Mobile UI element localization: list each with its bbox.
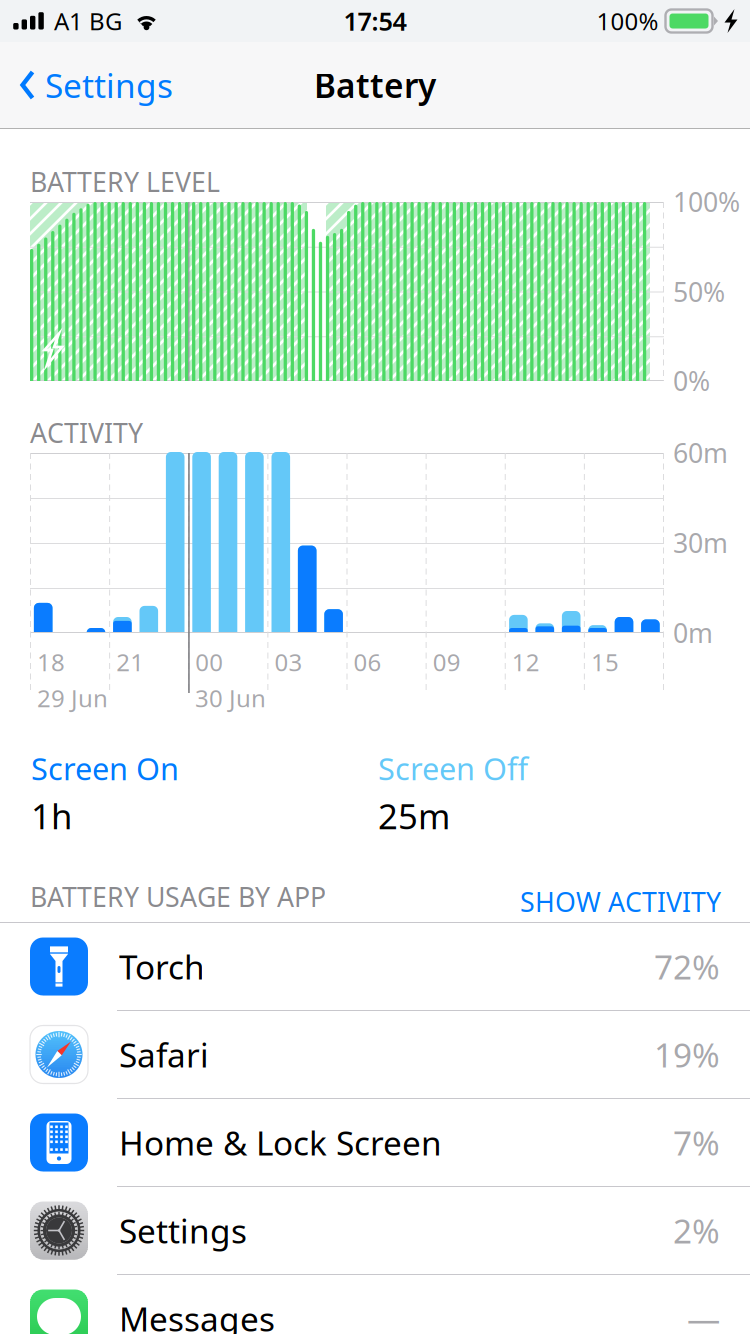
- staticText: A1 BG: [54, 5, 122, 37]
- staticText: 15: [591, 646, 619, 678]
- staticText: ACTIVITY: [30, 415, 143, 450]
- staticText: 09: [433, 646, 461, 678]
- staticText: 2%: [673, 1208, 720, 1253]
- staticText: Torch: [119, 944, 205, 989]
- staticText: 72%: [654, 944, 720, 989]
- button[interactable]: Messages: [0, 1275, 750, 1334]
- staticText: Home & Lock Screen: [119, 1120, 442, 1165]
- staticText: 17:54: [343, 4, 406, 38]
- staticText: 0m: [673, 615, 713, 650]
- staticText: 60m: [673, 435, 728, 470]
- staticText: 03: [274, 646, 302, 678]
- staticText: 21: [116, 646, 144, 678]
- staticText: 18: [37, 646, 65, 678]
- staticText: 30 Jun: [195, 682, 266, 714]
- staticText: Settings: [45, 63, 173, 107]
- button[interactable]: Settings: [0, 51, 173, 119]
- staticText: 7%: [673, 1120, 720, 1165]
- button[interactable]: Torch: [0, 923, 750, 1010]
- button[interactable]: Home & Lock Screen: [0, 1099, 750, 1186]
- staticText: 19%: [654, 1032, 720, 1077]
- staticText: 0%: [673, 363, 710, 398]
- button[interactable]: Safari: [0, 1011, 750, 1098]
- staticText: Screen On: [31, 748, 179, 789]
- staticText: 50%: [673, 274, 725, 309]
- button[interactable]: Settings: [0, 1187, 750, 1274]
- staticText: 100%: [596, 5, 658, 37]
- staticText: 12: [512, 646, 540, 678]
- staticText: SHOW ACTIVITY: [520, 884, 721, 919]
- staticText: Safari: [119, 1032, 209, 1077]
- staticText: Messages: [119, 1296, 275, 1334]
- staticText: BATTERY USAGE BY APP: [30, 879, 326, 914]
- staticText: Screen Off: [378, 748, 528, 789]
- staticText: 1h: [31, 793, 72, 839]
- staticText: 29 Jun: [37, 682, 108, 714]
- staticText: 30m: [673, 525, 728, 560]
- staticText: 00: [195, 646, 223, 678]
- staticText: 100%: [673, 184, 740, 219]
- button[interactable]: SHOW ACTIVITY: [520, 884, 721, 919]
- staticText: Battery: [314, 63, 436, 107]
- staticText: 06: [353, 646, 381, 678]
- staticText: —: [687, 1296, 720, 1334]
- staticText: Settings: [119, 1208, 247, 1253]
- staticText: BATTERY LEVEL: [30, 164, 220, 199]
- staticText: 25m: [378, 793, 450, 839]
